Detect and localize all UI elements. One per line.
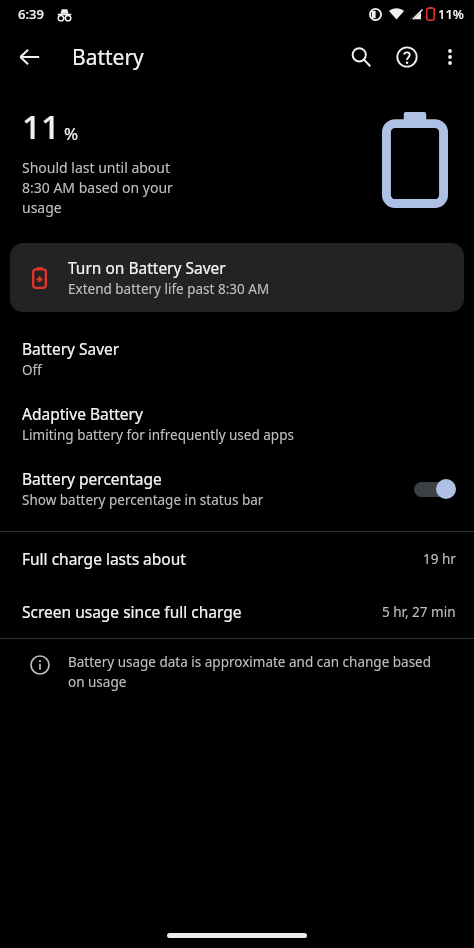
staticText: Battery usage data is approximate and ca… — [68, 653, 450, 691]
staticText: Adaptive Battery — [22, 403, 143, 424]
button[interactable]: Back — [6, 33, 54, 81]
button[interactable]: Search — [338, 34, 384, 80]
button[interactable]: Turn on Battery Saver — [10, 243, 464, 312]
button[interactable]: Battery percentage toggle — [410, 475, 456, 503]
button[interactable]: More options — [430, 37, 470, 77]
staticText: Full charge lasts about — [22, 548, 423, 569]
button[interactable]: Adaptive Battery — [0, 391, 474, 456]
button[interactable]: Full charge lasts about — [0, 532, 474, 585]
staticText: Extend battery life past 8:30 AM — [68, 280, 270, 298]
staticText: Turn on Battery Saver — [68, 257, 226, 278]
button[interactable]: Battery percentage — [0, 456, 474, 521]
staticText: Battery percentage — [22, 468, 162, 489]
staticText: Off — [22, 361, 42, 379]
staticText: 19 hr — [423, 550, 456, 568]
staticText: 6:39 — [18, 5, 44, 23]
staticText: 11% — [438, 5, 464, 23]
staticText: 5 hr, 27 min — [382, 603, 456, 621]
button[interactable]: Help — [384, 34, 430, 80]
button[interactable]: Screen usage since full charge — [0, 585, 474, 638]
staticText: Battery Saver — [22, 338, 120, 359]
staticText: Screen usage since full charge — [22, 601, 382, 622]
staticText: Show battery percentage in status bar — [22, 491, 264, 509]
staticText: % — [64, 122, 79, 145]
staticText: Should last until about 8:30 AM based on… — [22, 158, 190, 217]
staticText: Limiting battery for infrequently used a… — [22, 426, 294, 444]
staticText: Battery — [72, 43, 144, 72]
staticText: 11 — [22, 104, 60, 149]
button[interactable]: Battery Saver — [0, 326, 474, 391]
